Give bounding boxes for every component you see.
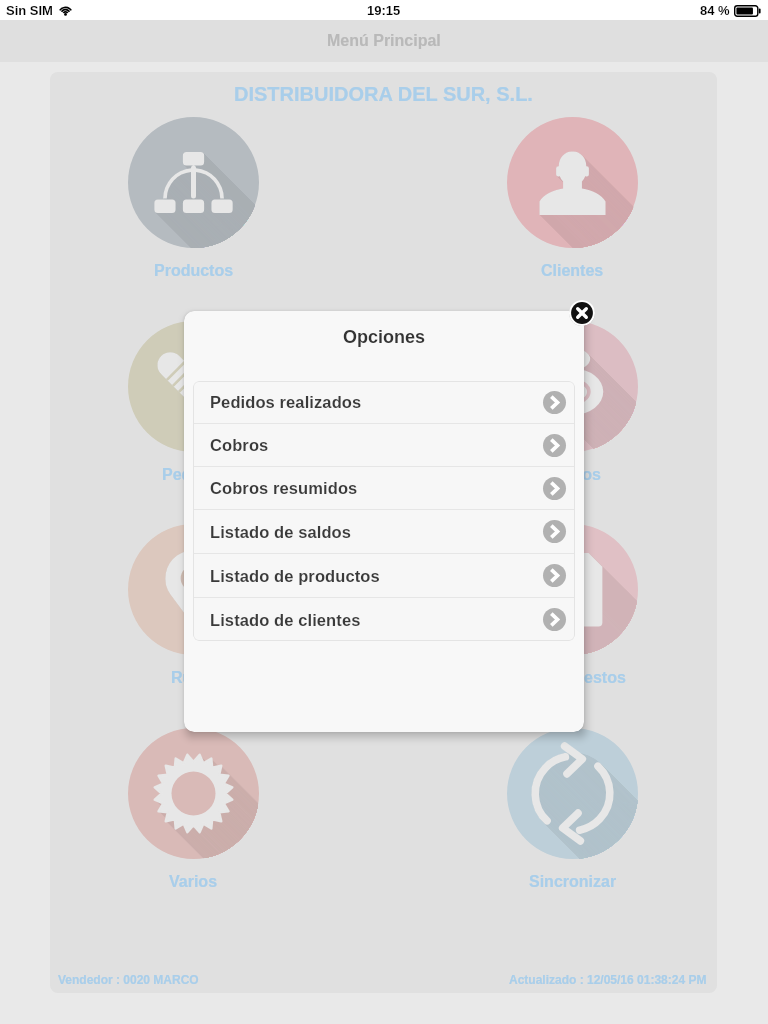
staticText: Cobros	[545, 466, 601, 484]
staticText: Productos	[154, 262, 234, 280]
button[interactable]: Clientes	[477, 117, 667, 287]
button[interactable]: Cobros resumidos	[193, 467, 575, 509]
button[interactable]: Rutas	[98, 524, 288, 694]
staticText: Cobros resumidos	[210, 479, 358, 497]
button[interactable]: Listado de saldos	[193, 510, 575, 553]
button[interactable]: Pedidos	[98, 321, 288, 491]
button[interactable]: Listado de clientes	[193, 598, 575, 641]
staticText: Sin SIM	[6, 3, 53, 18]
staticText: Clientes	[541, 262, 604, 280]
staticText: 19:15	[367, 3, 401, 18]
button[interactable]: Productos	[98, 117, 288, 287]
staticText: Varios	[169, 873, 218, 891]
staticText: Opciones	[343, 327, 426, 347]
button[interactable]: Varios	[98, 728, 288, 898]
staticText: Sincronizar	[529, 873, 617, 891]
staticText: Pedidos	[162, 466, 225, 484]
button[interactable]: Cobros	[477, 321, 667, 491]
button[interactable]: Cobros	[193, 424, 575, 466]
staticText: Listado de saldos	[210, 523, 352, 541]
staticText: Listado de clientes	[210, 611, 361, 629]
staticText: Cobros	[210, 436, 269, 454]
button[interactable]: Sincronizar	[477, 728, 667, 898]
button[interactable]: Presupuestos	[477, 524, 667, 694]
staticText: Pedidos realizados	[210, 393, 362, 411]
staticText: Presupuestos	[520, 669, 626, 687]
staticText: Menú Principal	[327, 32, 441, 50]
button[interactable]: Pedidos realizados	[193, 381, 575, 423]
staticText: Vendedor : 0020 MARCO	[58, 973, 199, 986]
staticText: DISTRIBUIDORA DEL SUR, S.L.	[234, 83, 533, 105]
button[interactable]: Listado de productos	[193, 554, 575, 597]
staticText: 84 %	[700, 3, 730, 18]
staticText: Rutas	[171, 669, 216, 687]
staticText: Listado de productos	[210, 567, 380, 585]
staticText: Actualizado : 12/05/16 01:38:24 PM	[509, 973, 707, 986]
button[interactable]: Cerrar	[569, 300, 595, 326]
